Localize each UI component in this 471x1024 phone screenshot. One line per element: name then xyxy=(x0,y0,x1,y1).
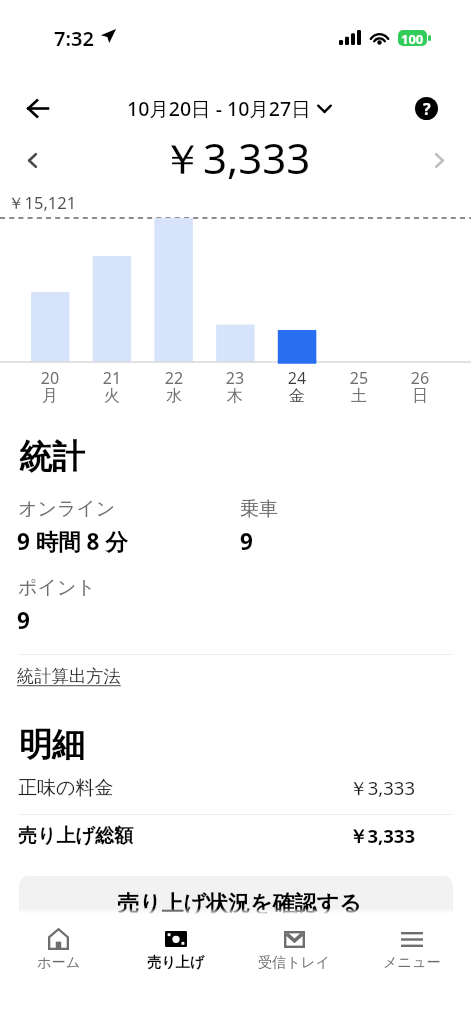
staticText: 木 xyxy=(205,386,265,406)
staticText: 21 xyxy=(82,367,142,389)
button[interactable]: 10月20日 - 10月27日 xyxy=(127,95,332,122)
staticText: ? xyxy=(423,98,431,120)
staticText: 売り上げ状況を確認する xyxy=(117,890,362,918)
button[interactable]: Previous week xyxy=(14,142,50,178)
staticText: メニュー xyxy=(383,953,441,971)
staticText: 9 時間 8 分 xyxy=(17,526,128,557)
button[interactable]: Help xyxy=(405,87,447,129)
staticText: 7:32 xyxy=(54,25,94,52)
staticText: 土 xyxy=(329,386,389,406)
button[interactable]: メニュー xyxy=(353,914,471,978)
staticText: 売り上げ総額 xyxy=(18,824,133,848)
staticText: 100 xyxy=(401,30,424,46)
staticText: 統計算出方法 xyxy=(17,665,121,687)
staticText: 24 xyxy=(267,367,327,389)
button[interactable]: 受信トレイ xyxy=(235,914,353,978)
staticText: 20 xyxy=(20,367,80,389)
staticText: ￥3,333 xyxy=(0,823,415,848)
staticText: 統計 xyxy=(19,436,85,478)
staticText: ホーム xyxy=(37,953,81,971)
staticText: 10月20日 - 10月27日 xyxy=(127,95,311,122)
staticText: 火 xyxy=(82,386,142,406)
button[interactable]: ホーム xyxy=(0,914,117,978)
button[interactable]: Next week xyxy=(421,142,457,178)
staticText: 日 xyxy=(390,386,450,406)
staticText: 9 xyxy=(240,526,253,557)
staticText: 月 xyxy=(20,386,80,406)
staticText: 22 xyxy=(144,367,204,389)
staticText: 売り上げ xyxy=(147,953,205,971)
staticText: 正味の料金 xyxy=(18,776,114,800)
button[interactable]: 売り上げ状況を確認する xyxy=(19,876,453,946)
staticText: 25 xyxy=(329,367,389,389)
staticText: ￥3,333 xyxy=(161,129,311,186)
staticText: 受信トレイ xyxy=(258,953,330,971)
staticText: ￥15,121 xyxy=(8,191,77,214)
staticText: 23 xyxy=(205,367,265,389)
staticText: 明細 xyxy=(19,724,85,766)
staticText: オンライン xyxy=(18,497,116,521)
button[interactable]: Back xyxy=(16,87,58,129)
staticText: 26 xyxy=(390,367,450,389)
staticText: ポイント xyxy=(18,576,96,600)
button[interactable]: 売り上げ xyxy=(117,914,235,978)
staticText: 乗車 xyxy=(240,497,278,521)
staticText: 金 xyxy=(267,386,327,406)
staticText: ￥3,333 xyxy=(0,775,415,800)
staticText: 9 xyxy=(17,605,30,636)
button[interactable]: 統計算出方法 xyxy=(17,665,121,687)
staticText: 水 xyxy=(144,386,204,406)
